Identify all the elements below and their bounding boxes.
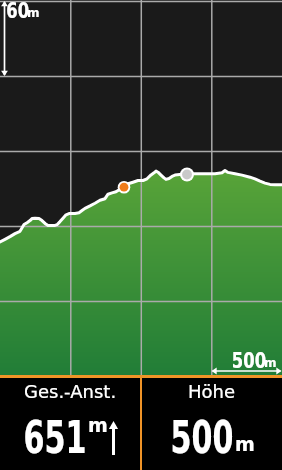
button[interactable]: Ges.-Anst. xyxy=(0,378,140,470)
staticText: m xyxy=(235,433,255,455)
staticText: 60 xyxy=(6,0,30,23)
staticText: m xyxy=(27,6,40,20)
staticText: 500 xyxy=(170,411,233,463)
staticText: m xyxy=(264,356,277,370)
staticText: Höhe xyxy=(188,381,236,402)
staticText: 651 xyxy=(23,411,86,463)
button[interactable]: Höhe xyxy=(142,378,282,470)
staticText: m xyxy=(88,414,108,436)
staticText: 500 xyxy=(232,349,266,373)
staticText: Ges.-Anst. xyxy=(24,381,117,402)
button[interactable]: Elevation profile chart xyxy=(0,0,282,375)
